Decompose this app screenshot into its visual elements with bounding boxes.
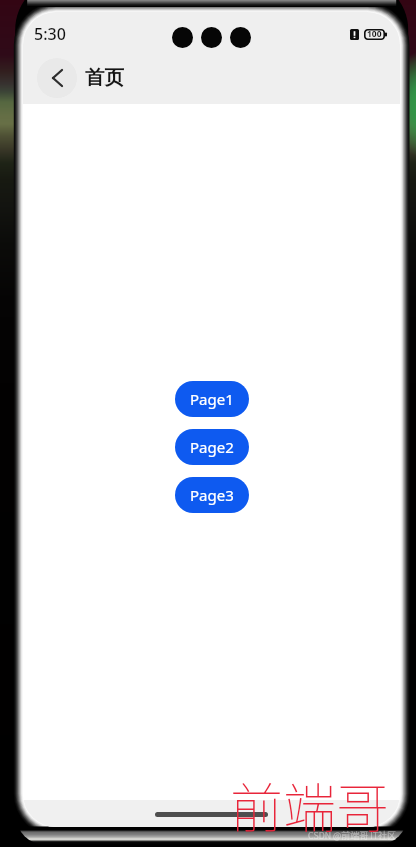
staticText: 5:30 xyxy=(34,23,66,45)
staticText: 首页 xyxy=(85,65,124,90)
staticText: 100 xyxy=(367,28,382,40)
staticText: Page1 xyxy=(190,389,234,409)
button[interactable]: Page1 xyxy=(175,381,249,417)
button[interactable]: Page3 xyxy=(175,477,249,513)
staticText: 前端哥 xyxy=(230,767,389,844)
staticText: Page2 xyxy=(190,437,234,457)
button[interactable]: Page2 xyxy=(175,429,249,465)
staticText: Page3 xyxy=(190,485,234,505)
button[interactable]: Back xyxy=(37,58,77,98)
staticText: CSDN @前端哥 IT社区 xyxy=(308,829,396,842)
